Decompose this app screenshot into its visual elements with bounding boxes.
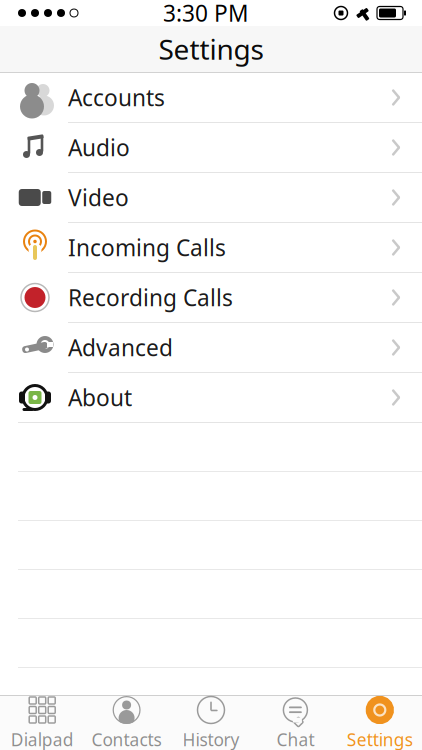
- staticText: Video: [68, 182, 129, 212]
- button[interactable]: About: [0, 373, 422, 423]
- staticText: Incoming Calls: [68, 232, 226, 262]
- staticText: Dialpad: [11, 728, 74, 750]
- button[interactable]: History: [169, 696, 253, 750]
- staticText: Audio: [68, 132, 130, 162]
- staticText: Recording Calls: [68, 282, 233, 312]
- button[interactable]: Audio: [0, 123, 422, 173]
- staticText: Contacts: [92, 728, 162, 750]
- button[interactable]: Contacts: [84, 696, 169, 750]
- button[interactable]: Chat: [253, 696, 338, 750]
- staticText: 3:30 PM: [163, 0, 249, 28]
- staticText: Chat: [276, 728, 314, 750]
- staticText: Advanced: [68, 332, 173, 362]
- button[interactable]: Incoming Calls: [0, 223, 422, 273]
- button[interactable]: Recording Calls: [0, 273, 422, 323]
- staticText: Accounts: [68, 82, 165, 112]
- staticText: About: [68, 382, 132, 412]
- button[interactable]: Settings: [338, 696, 422, 750]
- staticText: Settings: [347, 728, 413, 750]
- button[interactable]: Accounts: [0, 73, 422, 123]
- staticText: Settings: [158, 30, 263, 68]
- button[interactable]: Advanced: [0, 323, 422, 373]
- button[interactable]: Video: [0, 173, 422, 223]
- staticText: History: [182, 728, 239, 750]
- button[interactable]: Dialpad: [0, 696, 84, 750]
